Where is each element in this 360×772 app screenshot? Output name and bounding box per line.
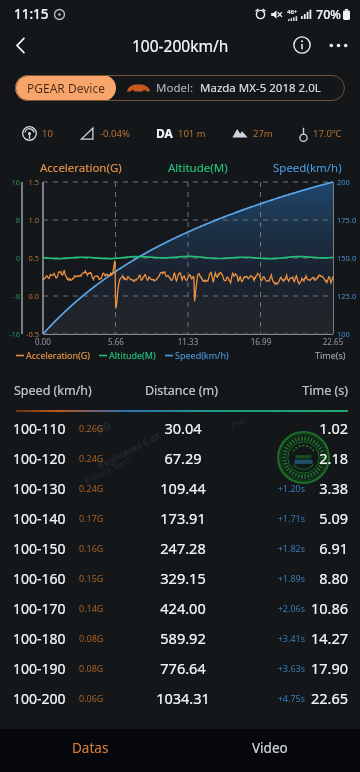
staticText: 0.24G — [79, 482, 104, 494]
button[interactable]: 100-200 — [0, 683, 360, 713]
staticText: 0 — [1, 253, 20, 263]
staticText: 70% — [316, 6, 341, 23]
staticText: 30.04 — [143, 418, 223, 438]
staticText: +2.06s — [255, 602, 305, 614]
staticText: Mazda MX-5 2018 2.0L — [200, 80, 321, 96]
button[interactable]: 100-150 — [0, 533, 360, 563]
staticText: 0.00 — [30, 336, 56, 347]
staticText: -8 — [1, 291, 20, 301]
staticText: 424.00 — [143, 598, 223, 618]
staticText: 3.38 — [302, 478, 348, 498]
staticText: 10.86 — [302, 598, 348, 618]
staticText: 10 — [42, 127, 53, 140]
button[interactable]: Back — [0, 26, 40, 64]
staticText: 11.33 — [175, 336, 201, 347]
button[interactable]: Video — [180, 726, 360, 769]
staticText: 0.08G — [79, 662, 104, 674]
staticText: 100-180 — [13, 629, 66, 648]
staticText: 14.27 — [302, 628, 348, 648]
staticText: 5.09 — [302, 508, 348, 528]
staticText: 0.08G — [79, 632, 104, 644]
staticText: 175.0 — [337, 215, 360, 225]
staticText: +1.71s — [255, 512, 305, 524]
staticText: PG — [93, 417, 114, 438]
staticText: 0.17G — [79, 512, 104, 524]
staticText: 17.0℃ — [313, 127, 342, 140]
staticText: 1.0 — [24, 215, 39, 225]
staticText: 589.92 — [143, 628, 223, 648]
staticText: Time (s) — [237, 382, 348, 399]
button[interactable]: 100-140 — [0, 503, 360, 533]
staticText: 0.5 — [24, 253, 39, 263]
staticText: Acceleration(G) — [40, 160, 122, 176]
staticText: Time(s) — [315, 349, 346, 361]
staticText: 16 — [1, 177, 20, 187]
staticText: 100-120 — [13, 449, 66, 468]
staticText: 100 — [337, 329, 360, 339]
staticText: 776.64 — [143, 658, 223, 678]
staticText: 100-190 — [13, 659, 66, 678]
button[interactable]: 100-110 — [0, 413, 360, 443]
staticText: Speed(km/h) — [175, 349, 229, 361]
staticText: Pro — [228, 413, 248, 431]
staticText: P-Store Ver.1 — [82, 453, 134, 486]
staticText: Video — [252, 739, 288, 757]
staticText: 0.24G — [79, 452, 104, 464]
button[interactable]: 100-130 — [0, 473, 360, 503]
staticText: 67.29 — [143, 448, 223, 468]
staticText: 17.90 — [302, 658, 348, 678]
button[interactable]: 100-180 — [0, 623, 360, 653]
staticText: -0.5 — [24, 329, 39, 339]
staticText: 100-200km/h — [132, 35, 229, 56]
staticText: 200 — [337, 177, 360, 187]
staticText: 0.0 — [24, 291, 39, 301]
staticText — [255, 422, 305, 434]
staticText: 22.65 — [302, 688, 348, 708]
staticText: -0.04% — [100, 127, 130, 140]
staticText: 329.15 — [143, 568, 223, 588]
staticText: -16 — [1, 329, 20, 339]
staticText: 247.28 — [143, 538, 223, 558]
staticText: 100-160 — [13, 569, 66, 588]
staticText: 16.99 — [248, 336, 274, 347]
staticText: 1034.31 — [143, 688, 223, 708]
staticText: +1.82s — [255, 542, 305, 554]
staticText: 8.80 — [302, 568, 348, 588]
button[interactable]: 100-160 — [0, 563, 360, 593]
staticText: Datas — [72, 739, 109, 757]
staticText: 125.0 — [337, 291, 360, 301]
staticText: 5.66 — [103, 336, 129, 347]
button[interactable]: 100-120 — [0, 443, 360, 473]
staticText: 101 m — [178, 127, 206, 140]
staticText: +1.89s — [255, 572, 305, 584]
staticText: Acceleration(G) — [26, 349, 90, 361]
button[interactable]: PGEAR Device — [15, 75, 345, 101]
staticText — [255, 452, 305, 464]
staticText: 11:15 — [14, 5, 49, 23]
button[interactable]: 100-190 — [0, 653, 360, 683]
staticText: Model: — [156, 80, 193, 96]
staticText: 1.5 — [24, 177, 39, 187]
staticText: Altitude(M) — [109, 349, 156, 361]
staticText: +3.41s — [255, 632, 305, 644]
staticText: 100-200 — [13, 689, 66, 708]
staticText: 0.26G — [79, 422, 104, 434]
staticText: 1.02 — [302, 418, 348, 438]
button[interactable]: 100-170 — [0, 593, 360, 623]
staticText: 100-170 — [13, 599, 66, 618]
staticText: +1.20s — [255, 482, 305, 494]
button[interactable]: Info — [283, 26, 321, 64]
staticText: 0.16G — [79, 542, 104, 554]
staticText: 109.44 — [143, 478, 223, 498]
staticText: 6.91 — [302, 538, 348, 558]
staticText: 100-140 — [13, 509, 66, 528]
staticText: PGEAR Device — [27, 80, 105, 96]
staticText: 173.91 — [143, 508, 223, 528]
button[interactable]: Datas — [0, 726, 180, 769]
staticText: 2.18 — [302, 448, 348, 468]
staticText: 100-110 — [13, 419, 66, 438]
button[interactable]: More options — [321, 28, 355, 62]
staticText: 0.14G — [79, 602, 104, 614]
staticText: Distance (m) — [126, 382, 237, 399]
staticText: +4.75s — [255, 692, 305, 704]
